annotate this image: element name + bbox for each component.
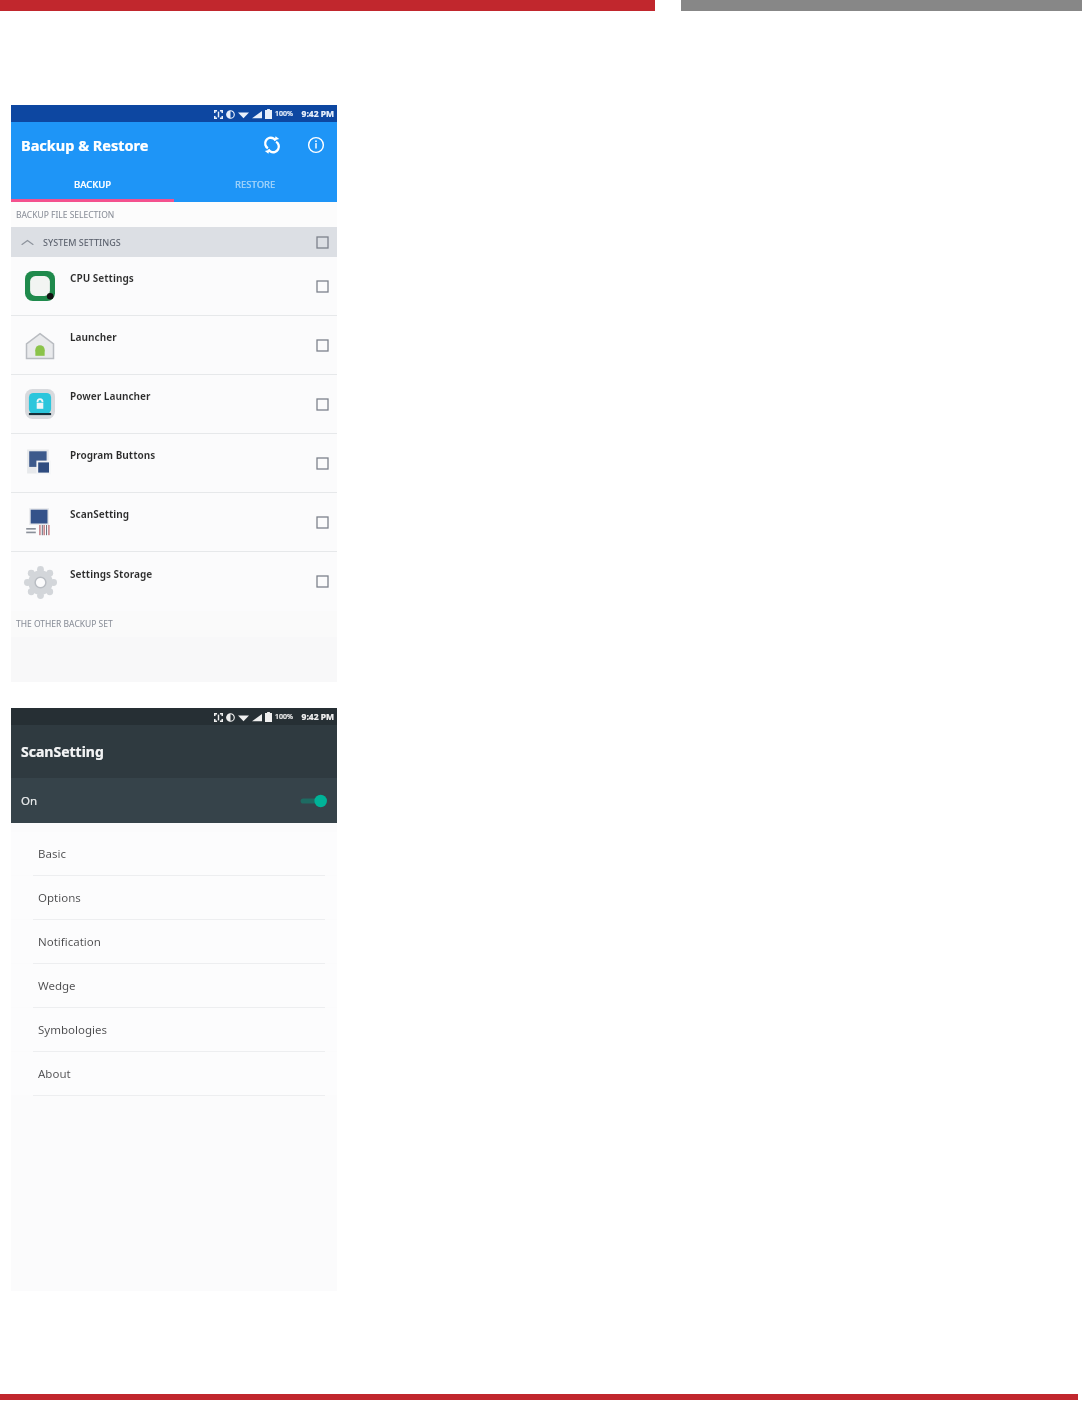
staticText: Backup & Restore bbox=[21, 135, 149, 155]
staticText: BACKUP FILE SELECTION bbox=[16, 209, 115, 221]
staticText: CPU Settings bbox=[70, 271, 134, 285]
staticText: Launcher bbox=[70, 330, 117, 344]
staticText: Notification bbox=[38, 934, 101, 950]
staticText: Options bbox=[38, 890, 81, 906]
staticText: Settings Storage bbox=[70, 567, 153, 581]
button[interactable]: Settings Storage bbox=[11, 552, 337, 611]
button[interactable]: RESTORE bbox=[174, 167, 337, 202]
staticText: 100% bbox=[275, 712, 293, 722]
button[interactable]: Info bbox=[303, 132, 329, 158]
button[interactable]: BACKUP bbox=[11, 167, 174, 202]
staticText: SYSTEM SETTINGS bbox=[43, 236, 121, 248]
button[interactable]: Program Buttons bbox=[11, 434, 337, 492]
staticText: 9:42 PM bbox=[301, 711, 334, 723]
staticText: Power Launcher bbox=[70, 389, 151, 403]
button[interactable]: Notification bbox=[11, 920, 337, 963]
button[interactable]: Launcher bbox=[11, 316, 337, 374]
button[interactable]: Wedge bbox=[11, 964, 337, 1007]
button[interactable]: CPU Settings bbox=[11, 257, 337, 315]
button[interactable]: Refresh bbox=[259, 132, 285, 158]
button[interactable]: About bbox=[11, 1052, 337, 1095]
staticText: Wedge bbox=[38, 978, 76, 994]
button[interactable]: SYSTEM SETTINGS bbox=[11, 227, 337, 257]
button[interactable]: Options bbox=[11, 876, 337, 919]
staticText: Basic bbox=[38, 846, 66, 862]
button[interactable]: On bbox=[11, 778, 337, 823]
staticText: Program Buttons bbox=[70, 448, 156, 462]
staticText: 100% bbox=[275, 109, 293, 119]
staticText: Symbologies bbox=[38, 1022, 107, 1038]
staticText: About bbox=[38, 1066, 71, 1082]
button[interactable]: Basic bbox=[11, 832, 337, 875]
button[interactable]: ScanSetting bbox=[11, 493, 337, 551]
staticText: RESTORE bbox=[235, 178, 276, 191]
staticText: On bbox=[21, 793, 38, 809]
button[interactable]: Power Launcher bbox=[11, 375, 337, 433]
staticText: ScanSetting bbox=[21, 742, 104, 761]
staticText: BACKUP bbox=[74, 178, 112, 191]
staticText: ScanSetting bbox=[70, 507, 130, 521]
staticText: 9:42 PM bbox=[301, 108, 334, 120]
button[interactable]: Symbologies bbox=[11, 1008, 337, 1051]
staticText: THE OTHER BACKUP SET bbox=[16, 618, 113, 630]
